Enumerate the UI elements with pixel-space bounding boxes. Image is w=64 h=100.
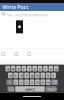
button[interactable]: Write Post (0, 2, 28, 12)
button[interactable]: q (5, 66, 10, 71)
staticText: a (9, 73, 11, 78)
button[interactable]: a (8, 73, 13, 78)
button[interactable]: t (27, 66, 32, 71)
button[interactable]: 123 (7, 86, 14, 92)
staticText: l (53, 73, 54, 78)
button[interactable]: d (19, 73, 23, 78)
staticText: h (36, 73, 38, 78)
button[interactable]: o (49, 66, 53, 71)
staticText: s (15, 73, 17, 78)
staticText: y (34, 66, 36, 71)
staticText: b (36, 79, 38, 85)
staticText: r (23, 66, 25, 71)
button[interactable]: return (46, 86, 57, 92)
staticText: d (20, 73, 22, 78)
staticText: w (12, 66, 15, 71)
button[interactable]: h (35, 73, 40, 78)
button[interactable]: u (38, 66, 42, 71)
button[interactable]: s (13, 73, 18, 78)
button[interactable]: p (54, 66, 59, 71)
button[interactable]: Add photo (1, 52, 6, 57)
staticText: 123 (8, 86, 14, 92)
button[interactable]: Add location (27, 52, 32, 57)
staticText: q (7, 66, 9, 71)
staticText: i (45, 66, 46, 71)
staticText: g (31, 73, 33, 78)
button[interactable]: x (19, 79, 23, 85)
staticText: m (46, 79, 50, 85)
button[interactable]: w (11, 66, 15, 71)
button[interactable]: n (40, 79, 45, 85)
staticText: z (15, 79, 17, 85)
staticText: n (42, 79, 44, 85)
staticText: space (25, 86, 35, 92)
button[interactable]: f (24, 73, 29, 78)
staticText: e (17, 66, 19, 71)
staticText: return (46, 86, 57, 92)
staticText: o (50, 66, 52, 71)
staticText: j (42, 73, 43, 78)
staticText: Say something about this... (6, 12, 51, 17)
button[interactable]: l (51, 73, 56, 78)
staticText: ⇧ (8, 80, 11, 84)
staticText: t (29, 66, 30, 71)
staticText: v (31, 79, 33, 85)
staticText: x (20, 79, 22, 85)
button[interactable]: g (30, 73, 34, 78)
staticText: u (39, 66, 41, 71)
button[interactable]: ⌫ (51, 79, 58, 85)
button[interactable]: b (35, 79, 40, 85)
staticText: Write Post (2, 3, 28, 11)
button[interactable]: Tag people (14, 52, 19, 57)
button[interactable]: m (46, 79, 50, 85)
button[interactable]: i (43, 66, 48, 71)
button[interactable]: r (22, 66, 26, 71)
staticText: k (47, 73, 49, 78)
button[interactable]: e (16, 66, 21, 71)
button[interactable]: ⇧ (6, 79, 13, 85)
staticText: c (26, 79, 28, 85)
button[interactable]: j (40, 73, 45, 78)
button[interactable]: space (15, 86, 45, 92)
button[interactable]: v (30, 79, 34, 85)
button[interactable]: c (24, 79, 29, 85)
staticText: p (55, 66, 57, 71)
button[interactable]: k (46, 73, 50, 78)
button[interactable]: y (32, 66, 37, 71)
button[interactable]: z (13, 79, 18, 85)
staticText: f (26, 73, 27, 78)
staticText: ⌫ (51, 80, 57, 84)
